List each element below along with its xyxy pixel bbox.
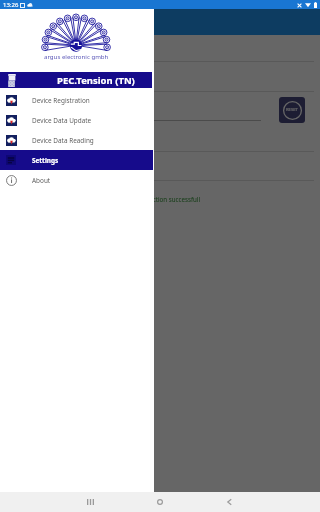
button[interactable]: Settings xyxy=(0,150,153,170)
staticText: Device Data Reading xyxy=(32,136,94,145)
button[interactable]: Device Data Reading xyxy=(0,130,153,150)
button[interactable]: Back xyxy=(194,492,264,512)
staticText: Device Registration xyxy=(32,96,90,105)
staticText: 13:26 xyxy=(3,1,19,9)
staticText: Connection successfull xyxy=(134,195,201,203)
staticText: About xyxy=(32,176,51,185)
button[interactable]: PEC.Tension (TN) xyxy=(0,72,152,88)
staticText: argus electronic gmbh xyxy=(44,52,109,60)
button[interactable]: Device Data Update xyxy=(0,110,153,130)
button[interactable]: Recents xyxy=(55,492,125,512)
staticText: RESET xyxy=(286,107,298,113)
staticText: Device Data Update xyxy=(32,116,92,125)
staticText: PEC.Tension (TN) xyxy=(57,74,135,87)
button[interactable]: Reset xyxy=(279,97,305,123)
button[interactable]: About xyxy=(0,170,153,190)
button[interactable]: Device Registration xyxy=(0,90,153,110)
staticText: Settings xyxy=(32,156,59,165)
button[interactable]: Home xyxy=(125,492,195,512)
